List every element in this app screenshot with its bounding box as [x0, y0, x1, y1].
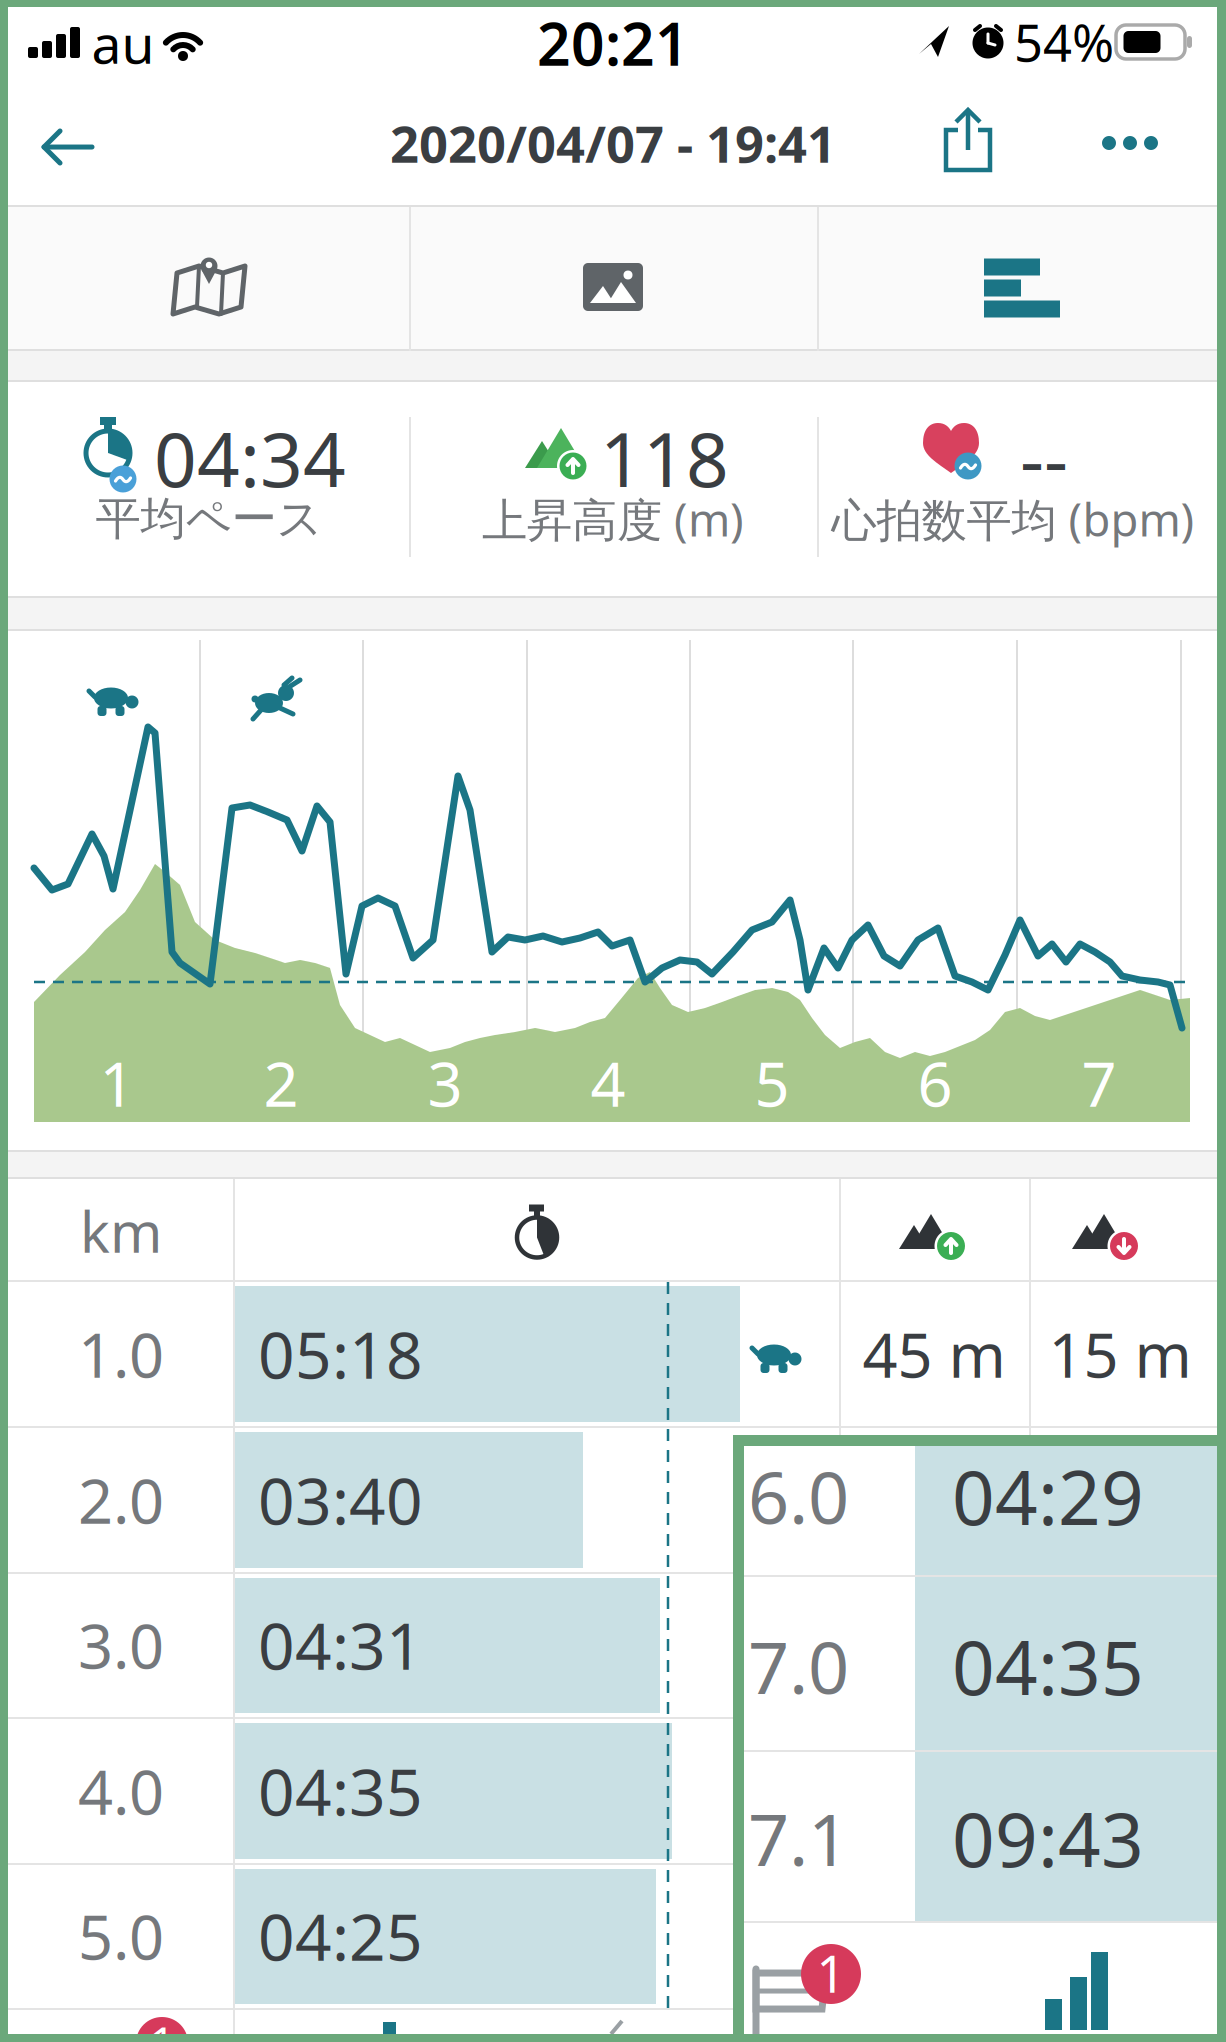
- staticText: 118: [600, 408, 729, 508]
- staticText: 5.0: [78, 1895, 164, 1977]
- staticText: 6: [917, 1042, 952, 1124]
- staticText: 54%: [1014, 8, 1114, 76]
- staticText: 04:35: [952, 1616, 1144, 1716]
- staticText: 04:25: [258, 1893, 423, 1978]
- staticText: 04:35: [258, 1748, 423, 1833]
- staticText: 3.0: [78, 1604, 164, 1686]
- staticText: 上昇高度 (m): [482, 489, 744, 549]
- staticText: 2020/04/07 - 19:41: [390, 109, 836, 177]
- staticText: 15 m: [1048, 1313, 1191, 1395]
- staticText: 7.1: [748, 1790, 849, 1886]
- staticText: 平均ペース: [95, 491, 322, 547]
- button[interactable]: Photos: [583, 263, 643, 311]
- staticText: 04:29: [952, 1446, 1144, 1546]
- staticText: 20:21: [537, 4, 689, 82]
- staticText: 1.0: [78, 1313, 164, 1395]
- staticText: 1: [99, 1042, 134, 1124]
- staticText: 03:40: [258, 1457, 423, 1542]
- staticText: 7: [1081, 1042, 1116, 1124]
- button[interactable]: Stats: [984, 258, 1060, 317]
- button[interactable]: Map: [171, 255, 247, 319]
- staticText: 3: [427, 1042, 462, 1124]
- staticText: 09:43: [952, 1788, 1144, 1888]
- staticText: km: [80, 1194, 162, 1268]
- staticText: 04:34: [154, 408, 346, 508]
- staticText: 2: [263, 1042, 298, 1124]
- button[interactable]: Share: [942, 106, 994, 174]
- staticText: 2.0: [78, 1459, 164, 1541]
- staticText: 45 m: [862, 1313, 1005, 1395]
- staticText: --: [1020, 408, 1068, 508]
- staticText: 04:31: [258, 1602, 423, 1687]
- staticText: 1: [148, 2011, 175, 2042]
- staticText: 5: [754, 1042, 789, 1124]
- staticText: 6.0: [748, 1448, 849, 1544]
- staticText: 1: [816, 1939, 845, 2007]
- staticText: au: [91, 8, 154, 78]
- button[interactable]: More: [1102, 136, 1158, 150]
- staticText: 05:18: [258, 1311, 423, 1396]
- staticText: 4: [590, 1042, 625, 1124]
- button[interactable]: Back: [40, 127, 96, 167]
- staticText: 4.0: [78, 1750, 164, 1832]
- staticText: 7.0: [748, 1618, 849, 1714]
- staticText: 心拍数平均 (bpm): [831, 489, 1194, 549]
